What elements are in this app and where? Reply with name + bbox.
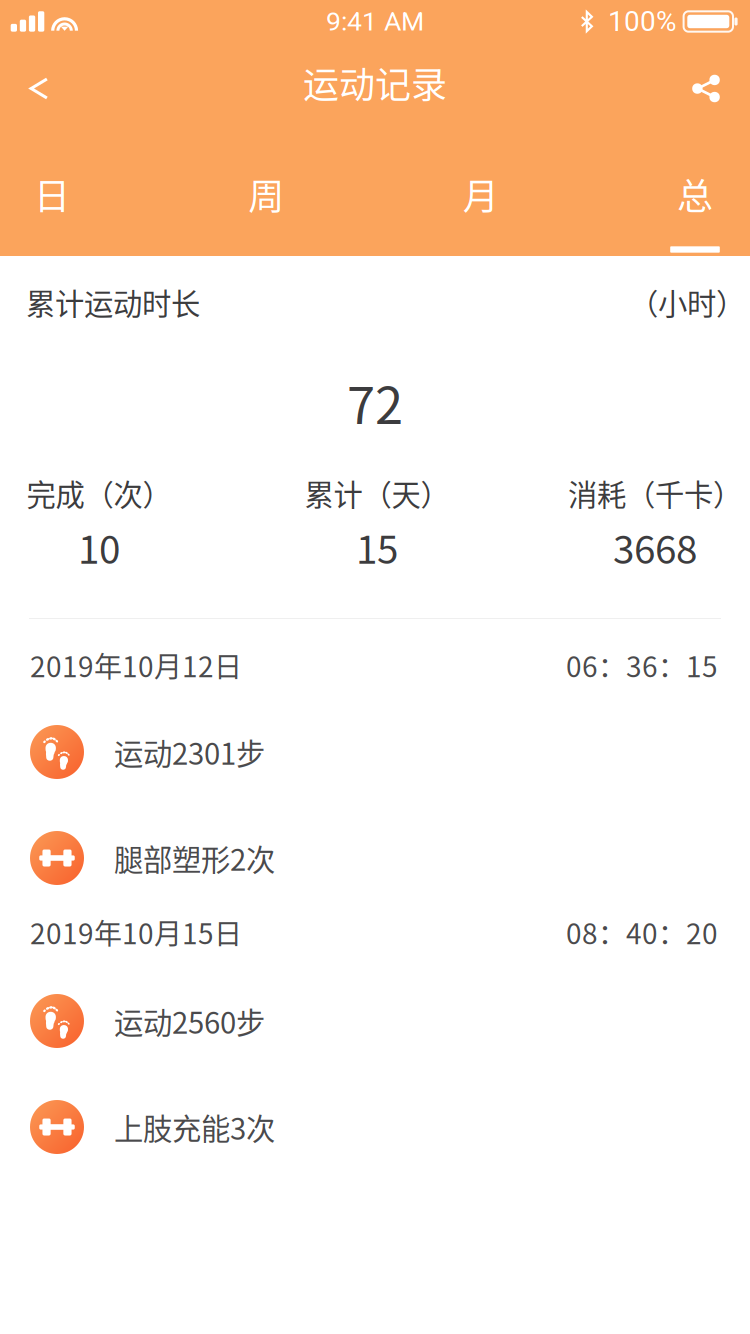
staticText: 2019年10月12日 (30, 645, 242, 685)
staticText: 10 (78, 519, 120, 575)
staticText: 72 (347, 365, 403, 439)
staticText: 15 (356, 519, 398, 575)
staticText: （小时） (629, 281, 745, 323)
button[interactable]: Back (8, 55, 70, 121)
staticText: 累计运动时长 (26, 281, 200, 323)
staticText: 消耗（千卡） (568, 472, 742, 514)
button[interactable]: 运动2560步 (0, 994, 750, 1048)
staticText: 日 (34, 168, 70, 220)
staticText: 周 (248, 168, 284, 220)
staticText: 3668 (613, 519, 697, 575)
button[interactable]: 日 (0, 120, 104, 256)
staticText: 08：40：20 (566, 912, 718, 952)
staticText: 累计（天） (304, 472, 449, 514)
staticText: 运动2560步 (114, 1000, 265, 1042)
button[interactable]: Share (675, 55, 737, 121)
button[interactable]: 周 (214, 120, 318, 256)
staticText: 06：36：15 (566, 645, 718, 685)
staticText: 总 (677, 168, 713, 220)
staticText: 完成（次） (26, 472, 171, 514)
staticText: 运动记录 (303, 56, 447, 108)
button[interactable]: 上肢充能3次 (0, 1100, 750, 1154)
button[interactable]: 运动2301步 (0, 725, 750, 779)
staticText: 月 (463, 168, 499, 220)
staticText: 100% (608, 5, 677, 38)
staticText: 9:41 AM (326, 6, 424, 37)
staticText: 上肢充能3次 (114, 1106, 275, 1148)
staticText: 2019年10月15日 (30, 912, 242, 952)
button[interactable]: 总 (643, 120, 747, 256)
staticText: 腿部塑形2次 (114, 837, 275, 879)
staticText: 运动2301步 (114, 731, 265, 773)
button[interactable]: 月 (429, 120, 533, 256)
button[interactable]: 腿部塑形2次 (0, 831, 750, 885)
